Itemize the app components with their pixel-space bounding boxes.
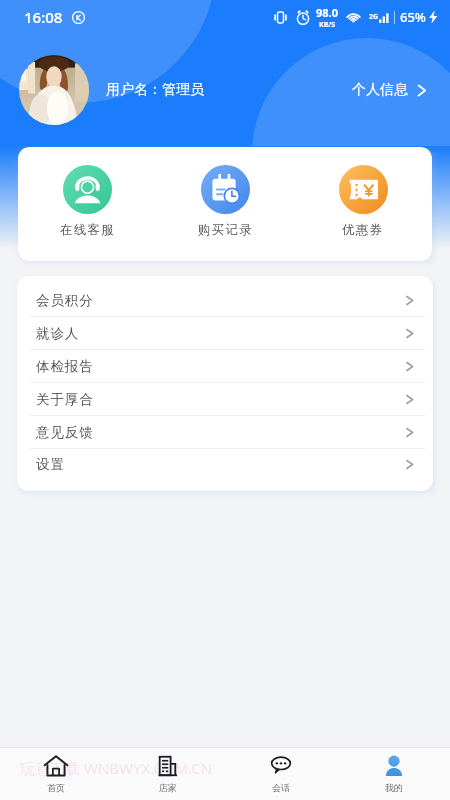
button[interactable]: 在线客服	[18, 147, 156, 261]
button[interactable]: 个人信息	[348, 77, 432, 103]
staticText: 16:08	[24, 7, 63, 27]
staticText: 首页	[47, 782, 65, 793]
staticText: 我的	[385, 782, 403, 793]
staticText: KB/S	[319, 20, 336, 30]
button[interactable]: 会话	[224, 750, 337, 798]
staticText: 会话	[272, 782, 290, 793]
button[interactable]: 优惠券	[294, 147, 432, 261]
staticText: 2G	[369, 12, 379, 22]
button[interactable]: 购买记录	[156, 147, 294, 261]
staticText: 意见反馈	[36, 424, 94, 441]
staticText: 就诊人	[36, 325, 80, 342]
staticText: 购买记录	[198, 222, 253, 238]
staticText: 体检报告	[36, 358, 94, 375]
staticText: 关于厚合	[36, 391, 94, 408]
button[interactable]: 就诊人	[17, 317, 433, 349]
staticText: 个人信息	[352, 81, 408, 99]
button[interactable]: 关于厚合	[17, 383, 433, 415]
staticText: 店家	[159, 782, 177, 793]
button[interactable]: 体检报告	[17, 350, 433, 382]
staticText: 用户名：管理员	[106, 81, 204, 99]
staticText: 设置	[36, 456, 65, 473]
staticText: 玩意下载 WNBWYX.COM.CN	[20, 758, 213, 778]
button[interactable]: 意见反馈	[17, 416, 433, 448]
staticText: 98.0	[316, 5, 338, 20]
staticText: 65%	[400, 8, 426, 26]
button[interactable]: 店家	[112, 750, 224, 798]
button[interactable]: 设置	[17, 449, 433, 480]
staticText: 会员积分	[36, 292, 94, 309]
button[interactable]: 我的	[337, 750, 450, 798]
button[interactable]: 首页	[0, 750, 112, 798]
button[interactable]: 会员积分	[17, 284, 433, 316]
staticText: 优惠券	[342, 222, 384, 238]
staticText: 在线客服	[60, 222, 115, 238]
